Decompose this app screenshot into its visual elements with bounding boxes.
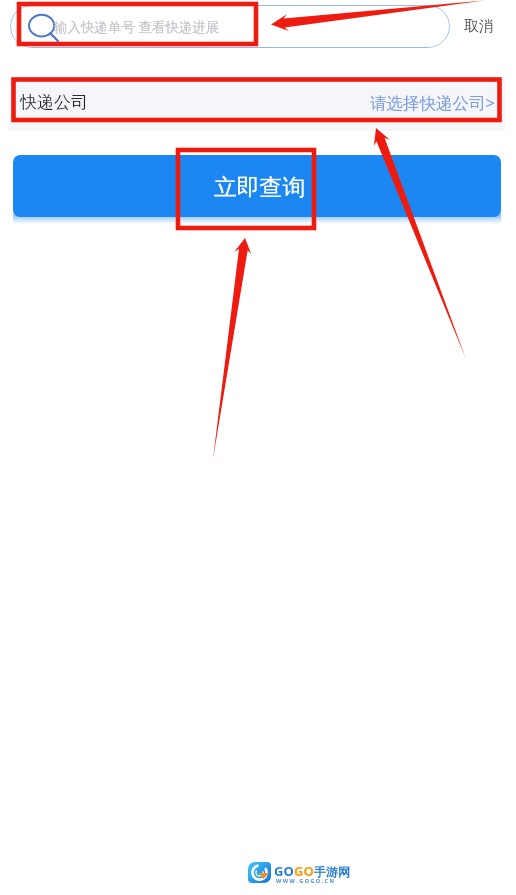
staticText: 快递公司 xyxy=(20,92,88,113)
staticText: GO xyxy=(294,862,314,880)
other: Search xyxy=(28,14,60,46)
button[interactable]: 立即查询 xyxy=(13,155,501,217)
staticText: 输入快递单号 查看快递进展 xyxy=(54,18,220,36)
button[interactable]: Search xyxy=(10,5,450,48)
staticText: 请选择快递公司> xyxy=(370,91,495,114)
staticText: 取消 xyxy=(464,17,494,36)
staticText: 立即查询 xyxy=(214,173,306,202)
button[interactable]: 取消 xyxy=(455,5,503,48)
staticText: 手游网 xyxy=(314,864,350,879)
button[interactable]: 快递公司 xyxy=(9,79,505,131)
staticText: GO xyxy=(274,862,294,880)
staticText: W W W . G O G O . C N xyxy=(276,877,335,884)
